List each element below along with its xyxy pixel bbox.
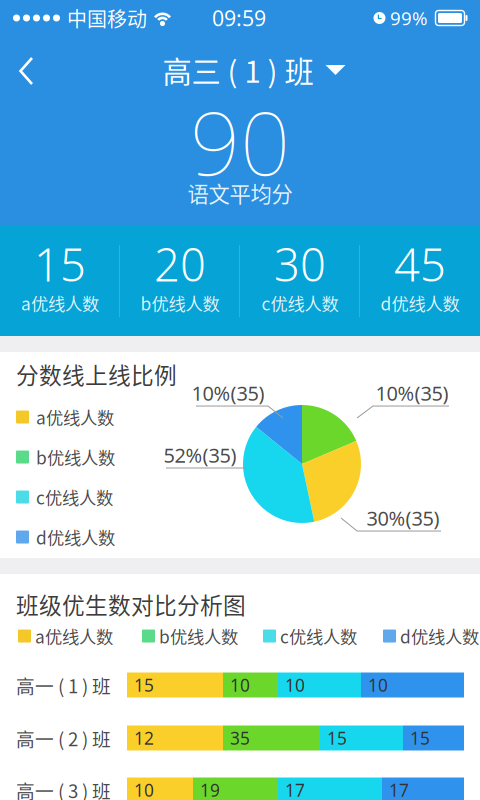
staticText: 10%(35)	[191, 380, 264, 406]
staticText: 高一 ( 3 ) 班	[16, 776, 111, 800]
staticText: b优线人数	[36, 444, 115, 470]
staticText: 10	[230, 673, 250, 696]
staticText: 10%(35)	[375, 380, 448, 406]
staticText: 高一 ( 1 ) 班	[16, 671, 111, 698]
button[interactable]: Back	[3, 48, 51, 94]
staticText: 15	[410, 726, 430, 749]
staticText: 15	[327, 726, 347, 749]
staticText: 19	[200, 778, 220, 800]
staticText: 10	[134, 778, 154, 800]
button[interactable]: 45	[360, 226, 480, 336]
staticText: 分数线上线比例	[16, 358, 177, 390]
button[interactable]: 15	[0, 226, 120, 336]
staticText: 高三 ( 1 ) 班	[162, 49, 313, 91]
staticText: b优线人数	[159, 623, 238, 649]
staticText: c优线人数	[280, 623, 357, 649]
staticText: 班级优生数对比分析图	[16, 588, 246, 620]
staticText: 09:59	[212, 4, 266, 32]
staticText: 15	[134, 673, 154, 696]
button[interactable]: 高一 ( 3 ) 班	[0, 574, 480, 800]
staticText: 99%	[390, 6, 428, 30]
staticText: 45	[394, 234, 446, 294]
staticText: d优线人数	[36, 524, 115, 550]
staticText: 90	[190, 83, 290, 199]
staticText: 高一 ( 2 ) 班	[16, 724, 111, 751]
button[interactable]: 20	[120, 226, 240, 336]
staticText: a优线人数	[21, 290, 99, 316]
staticText: a优线人数	[35, 623, 113, 649]
staticText: 语文平均分	[187, 178, 292, 208]
staticText: d优线人数	[380, 290, 459, 316]
staticText: c优线人数	[261, 290, 338, 316]
button[interactable]: 30	[240, 226, 360, 336]
staticText: b优线人数	[140, 290, 219, 316]
staticText: 52%(35)	[163, 442, 236, 468]
button[interactable]: 高一 ( 1 ) 班	[0, 574, 480, 800]
staticText: 10	[285, 673, 305, 696]
staticText: 35	[230, 726, 250, 749]
staticText: a优线人数	[36, 404, 114, 430]
staticText: 15	[34, 234, 86, 294]
button[interactable]: 高一 ( 2 ) 班	[0, 574, 480, 800]
staticText: 17	[285, 778, 305, 800]
staticText: 30	[274, 234, 326, 294]
staticText: 10	[368, 673, 388, 696]
staticText: 20	[154, 234, 206, 294]
staticText: 30%(35)	[366, 505, 439, 531]
button[interactable]: 高三 ( 1 ) 班	[154, 48, 353, 92]
staticText: 中国移动	[67, 3, 147, 32]
staticText: c优线人数	[36, 484, 113, 510]
staticText: 12	[134, 726, 154, 749]
staticText: d优线人数	[400, 623, 479, 649]
staticText: 17	[389, 778, 409, 800]
